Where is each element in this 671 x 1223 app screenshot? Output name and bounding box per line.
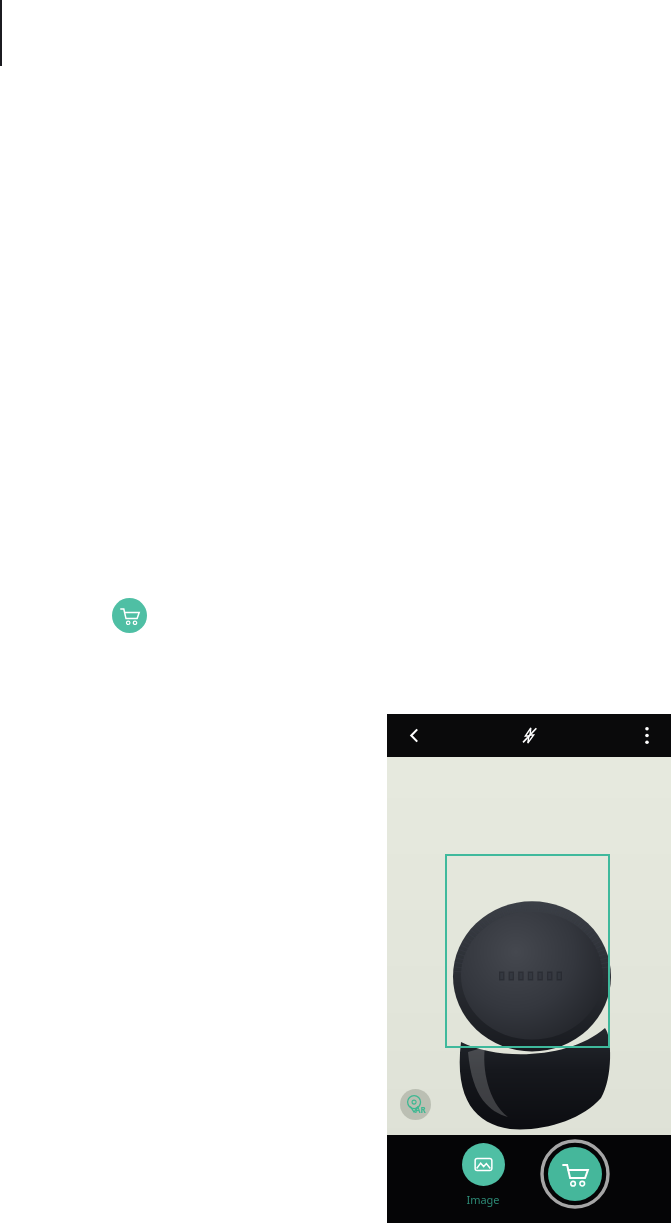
button[interactable]: AR mode <box>400 1089 431 1120</box>
staticText: Image <box>466 1192 500 1207</box>
button[interactable]: More options <box>630 714 664 757</box>
button[interactable]: Flash off <box>507 714 551 757</box>
button[interactable]: Shop this item <box>538 1137 612 1211</box>
button[interactable]: Back <box>394 714 434 757</box>
staticText: AR <box>415 1104 426 1115</box>
button[interactable]: Image <box>457 1143 509 1213</box>
button[interactable]: Shopping cart <box>112 598 147 633</box>
